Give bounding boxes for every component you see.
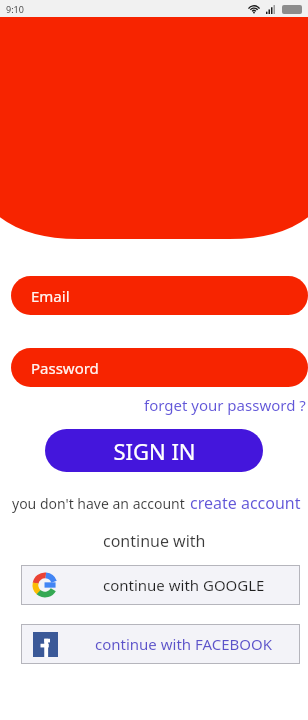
button[interactable]: Email (11, 276, 308, 315)
staticText: you don't have an account (12, 494, 185, 513)
staticText: Password (31, 358, 99, 378)
button[interactable]: forget your password ? (144, 393, 308, 417)
staticText: continue with GOOGLE (103, 575, 265, 595)
staticText: create account (190, 492, 301, 514)
staticText: Email (31, 286, 70, 306)
staticText: continue with FACEBOOK (95, 634, 273, 654)
staticText: forget your password ? (144, 395, 306, 415)
staticText: continue with (103, 530, 206, 552)
other: Continue with Google (33, 573, 57, 597)
button[interactable]: create account (190, 490, 301, 516)
staticText: SIGN IN (113, 436, 196, 466)
other: Continue with Facebook (33, 632, 58, 657)
staticText: 9:10 (6, 3, 24, 15)
button[interactable]: Continue with Google (21, 565, 300, 605)
button[interactable]: Password (11, 348, 308, 387)
button[interactable]: Continue with Facebook (21, 624, 300, 664)
button[interactable]: SIGN IN (45, 429, 263, 472)
